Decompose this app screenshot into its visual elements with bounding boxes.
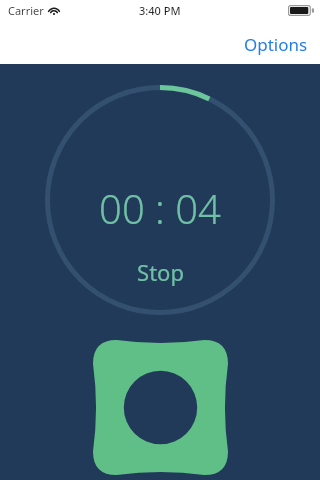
button[interactable]: Record: [93, 340, 228, 475]
staticText: 00 : 04: [99, 181, 221, 235]
staticText: Options: [244, 33, 308, 56]
button[interactable]: Options: [240, 31, 312, 58]
staticText: Carrier: [8, 3, 44, 18]
staticText: 3:40 PM: [139, 3, 181, 18]
staticText: Stop: [137, 257, 184, 287]
button[interactable]: 00 : 04: [45, 85, 275, 315]
